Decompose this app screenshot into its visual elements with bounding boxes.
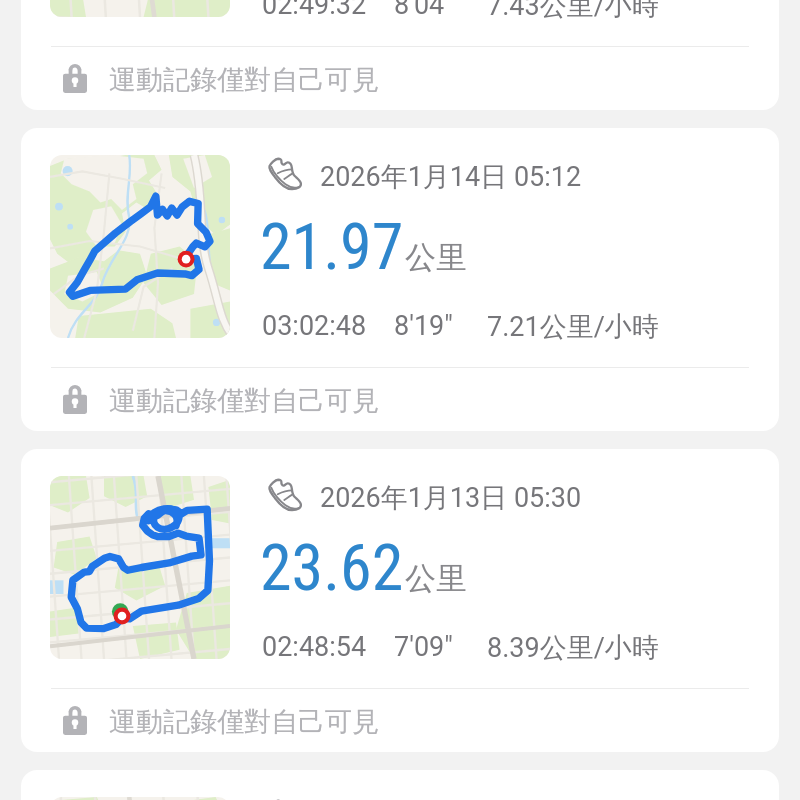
staticText: 運動記錄僅對自己可見 <box>109 384 379 418</box>
staticText: 03:02:48 <box>262 310 367 342</box>
other: Private activity <box>63 705 87 735</box>
other: Private activity <box>63 63 87 93</box>
button[interactable]: Running activity <box>21 128 779 431</box>
button[interactable]: Running activity <box>21 0 779 110</box>
other: Running activity <box>265 797 306 800</box>
other: Running activity <box>265 155 306 195</box>
other: Private activity <box>63 384 87 414</box>
staticText: 7'09" <box>394 631 453 663</box>
staticText: 8.39公里/小時 <box>487 631 659 665</box>
button[interactable]: Private activity <box>21 47 779 110</box>
button[interactable]: Running activity <box>21 449 779 752</box>
staticText: 02:48:54 <box>262 631 367 663</box>
staticText: 7.21公里/小時 <box>487 310 659 344</box>
staticText: 公里 <box>405 559 467 598</box>
staticText: 運動記錄僅對自己可見 <box>109 63 379 97</box>
button[interactable]: Private activity <box>21 368 779 431</box>
button[interactable]: Running activity <box>21 770 779 800</box>
staticText: 23.62 <box>260 531 404 606</box>
staticText: 2026年1月14日 05:12 <box>320 160 582 194</box>
other: Running activity <box>265 476 306 516</box>
staticText: 21.97 <box>260 210 404 285</box>
staticText: 2026年1月13日 05:30 <box>320 481 582 515</box>
staticText: 運動記錄僅對自己可見 <box>109 705 379 739</box>
staticText: 7.43公里/小時 <box>487 0 659 23</box>
button[interactable]: Private activity <box>21 689 779 752</box>
staticText: 8'04" <box>394 0 453 21</box>
staticText: 公里 <box>405 238 467 277</box>
staticText: 02:49:32 <box>262 0 367 21</box>
staticText: 8'19" <box>394 310 453 342</box>
